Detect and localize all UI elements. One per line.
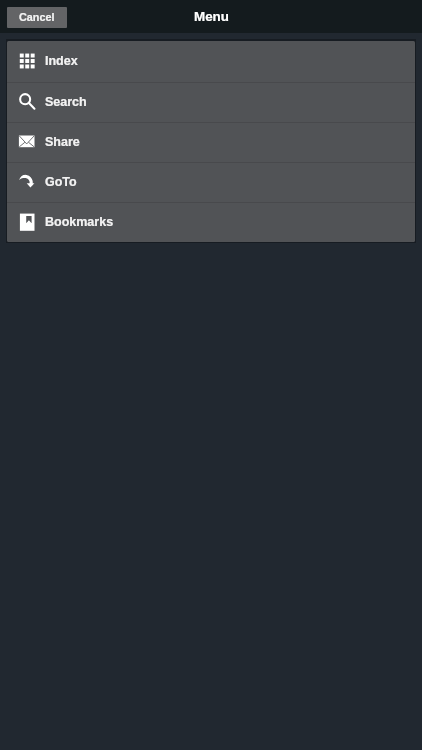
staticText: Share [45,135,80,149]
staticText: GoTo [45,175,77,189]
staticText: Search [45,95,87,109]
button[interactable]: Cancel [7,7,67,28]
staticText: Menu [194,9,229,24]
staticText: Cancel [19,11,55,23]
staticText: Index [45,54,78,68]
button[interactable]: Share [7,123,415,162]
button[interactable]: Bookmarks [7,203,415,242]
staticText: Bookmarks [45,215,114,229]
button[interactable]: GoTo [7,163,415,202]
button[interactable]: Index [7,41,415,82]
button[interactable]: Search [7,83,415,122]
